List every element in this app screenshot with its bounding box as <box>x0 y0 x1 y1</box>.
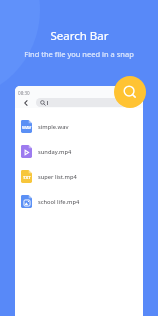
staticText: Search Bar <box>50 28 109 44</box>
button[interactable]: sunday.mp4 <box>15 139 143 164</box>
button[interactable]: WAV <box>15 114 143 139</box>
staticText: school life.mp4 <box>38 198 80 206</box>
staticText: sunday.mp4 <box>38 148 72 156</box>
staticText: WAV <box>22 125 32 131</box>
button[interactable]: Back <box>15 97 36 108</box>
button[interactable]: school life.mp4 <box>15 189 143 214</box>
staticText: super list.mp4 <box>38 173 77 181</box>
staticText: 08:30 <box>18 90 30 96</box>
staticText: simple.wav <box>38 123 69 131</box>
staticText: TXT <box>23 175 31 181</box>
button[interactable]: TXT <box>15 164 143 189</box>
button[interactable] <box>36 98 138 107</box>
staticText: Find the file you need in a snap <box>24 49 134 59</box>
button[interactable]: Search <box>114 76 146 108</box>
